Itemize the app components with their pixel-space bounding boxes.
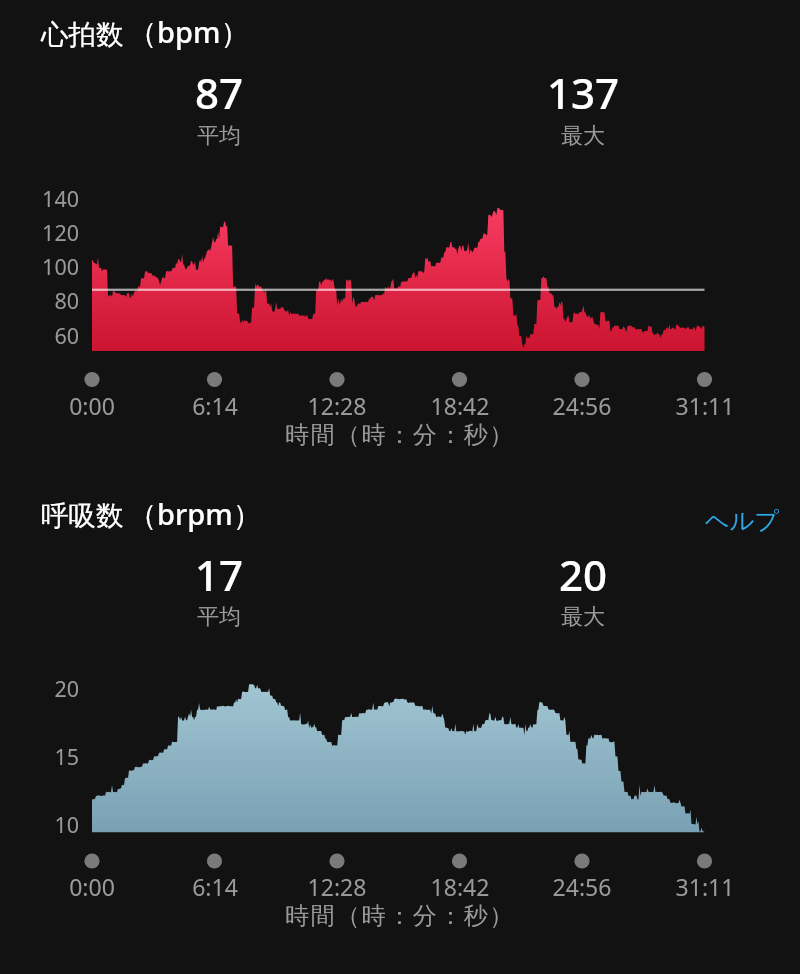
staticText: 80 xyxy=(0,286,79,315)
staticText: 24:56 xyxy=(422,390,742,421)
staticText: 18:42 xyxy=(300,871,620,902)
staticText: 心拍数 xyxy=(41,18,124,53)
staticText: 0:00 xyxy=(0,390,252,421)
button[interactable]: ヘルプ xyxy=(699,501,785,541)
staticText: 140 xyxy=(0,184,79,213)
staticText: 10 xyxy=(0,810,79,839)
staticText: 24:56 xyxy=(422,871,742,902)
staticText: 87 xyxy=(59,64,379,121)
staticText: 20 xyxy=(0,674,79,703)
staticText: 60 xyxy=(0,321,79,350)
staticText: 17 xyxy=(59,546,379,603)
staticText: 31:11 xyxy=(545,390,800,421)
staticText: 31:11 xyxy=(545,871,800,902)
staticText: 6:14 xyxy=(55,871,375,902)
staticText: 時間（時：分：秒） xyxy=(180,420,620,450)
staticText: 20 xyxy=(423,546,743,603)
staticText: 最大 xyxy=(423,603,743,631)
staticText: 18:42 xyxy=(300,390,620,421)
staticText: 100 xyxy=(0,252,79,281)
staticText: （brpm） xyxy=(128,494,262,534)
staticText: 平均 xyxy=(59,603,379,631)
staticText: 137 xyxy=(423,64,743,121)
staticText: 12:28 xyxy=(177,390,497,421)
button[interactable]: 心拍数グラフ xyxy=(30,180,720,360)
staticText: 0:00 xyxy=(0,871,252,902)
staticText: 最大 xyxy=(423,122,743,150)
staticText: 6:14 xyxy=(55,390,375,421)
staticText: 呼吸数 xyxy=(41,499,124,534)
staticText: 12:28 xyxy=(177,871,497,902)
staticText: 15 xyxy=(0,742,79,771)
button[interactable]: 呼吸数グラフ xyxy=(30,665,720,845)
staticText: 平均 xyxy=(59,122,379,150)
staticText: ヘルプ xyxy=(705,506,779,536)
staticText: （bpm） xyxy=(128,12,250,52)
staticText: 時間（時：分：秒） xyxy=(180,901,620,931)
staticText: 120 xyxy=(0,218,79,247)
